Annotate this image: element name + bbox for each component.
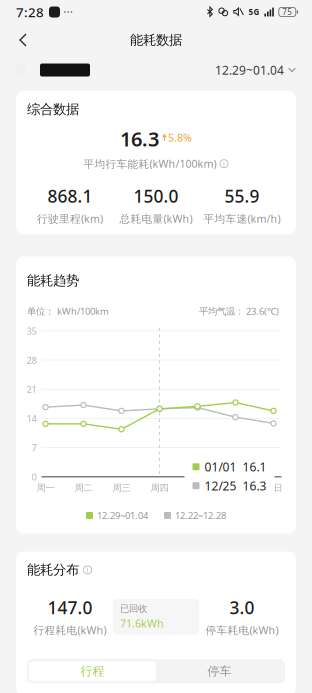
button[interactable]: 停车 xyxy=(156,661,283,681)
staticText: 12.29~01.04 xyxy=(97,509,148,522)
staticText: 71.6kWh xyxy=(120,616,164,630)
staticText: 周五 xyxy=(188,482,206,494)
staticText: 停车 xyxy=(207,664,231,678)
staticText: 147.0 xyxy=(47,596,92,619)
staticText: 周二 xyxy=(74,482,92,494)
staticText: 单位： kWh/100km xyxy=(27,305,109,317)
staticText: 12.29~01.04 xyxy=(215,62,284,78)
staticText: 综合数据 xyxy=(27,101,79,117)
staticText: 150.0 xyxy=(133,184,178,207)
staticText: 平均车速(km/h) xyxy=(203,211,280,226)
staticText: i xyxy=(223,159,225,168)
staticText: 28 xyxy=(26,354,36,366)
staticText: 行程耗电(kWh) xyxy=(33,623,106,637)
staticText: 周四 xyxy=(150,482,168,494)
staticText: 01/01 xyxy=(204,459,236,475)
staticText: 16.3 xyxy=(120,125,159,152)
staticText: 868.1 xyxy=(47,184,92,207)
staticText: 行程 xyxy=(80,664,104,678)
staticText: 5.8% xyxy=(168,131,192,145)
staticText: 7 xyxy=(31,441,36,454)
button[interactable]: 12.29~01.04 xyxy=(215,56,296,84)
staticText: 21 xyxy=(26,383,36,395)
staticText: 行驶里程(km) xyxy=(37,211,103,226)
staticText: 14 xyxy=(26,412,36,425)
staticText: 周六 xyxy=(226,482,244,494)
staticText: 55.9 xyxy=(224,184,259,207)
staticText: 35 xyxy=(26,325,36,337)
staticText: 能耗数据 xyxy=(130,32,182,48)
staticText: 12/25 xyxy=(204,478,236,494)
staticText: 平均气温： 23.6(℃) xyxy=(199,305,279,317)
staticText: 12.22~12.28 xyxy=(175,509,226,522)
staticText: 能耗趋势 xyxy=(27,272,79,289)
staticText: 3.0 xyxy=(229,596,254,619)
staticText: 7:28 xyxy=(16,3,44,21)
staticText: i xyxy=(86,565,88,574)
staticText: 周三 xyxy=(112,482,130,494)
staticText: 能耗分布 xyxy=(27,562,79,578)
staticText: 停车耗电(kWh) xyxy=(205,623,278,637)
staticText: 平均行车能耗(kWh/100km) xyxy=(83,157,216,171)
button[interactable]: Back xyxy=(6,25,40,55)
button[interactable]: 行程 xyxy=(29,661,156,681)
staticText: 总耗电量(kWh) xyxy=(119,211,192,226)
staticText: 16.1 xyxy=(242,459,266,475)
staticText: 0 xyxy=(31,471,36,483)
staticText: 75 xyxy=(282,7,292,17)
staticText: 16.3 xyxy=(242,478,266,494)
staticText: 已回收 xyxy=(120,603,147,614)
staticText: 5G xyxy=(248,7,259,17)
staticText: 周一 xyxy=(36,482,54,494)
staticText: 周日 xyxy=(264,482,282,494)
